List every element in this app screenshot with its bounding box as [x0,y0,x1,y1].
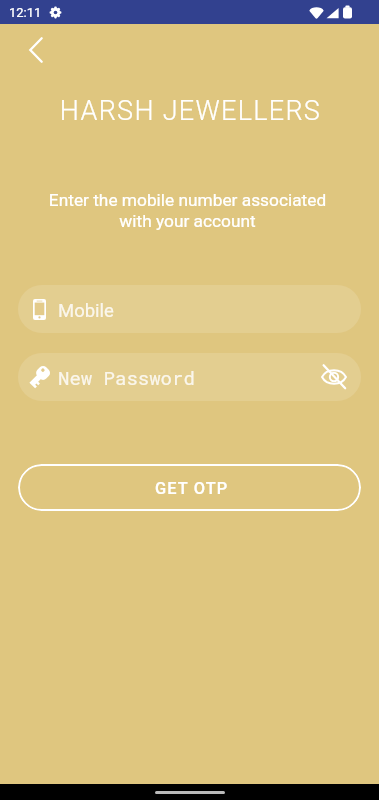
staticText: Enter the mobile number associated with … [40,190,335,231]
staticText: GET OTP [155,479,229,498]
button[interactable]: GET OTP [18,464,361,511]
button[interactable]: Mobile [18,285,361,333]
staticText: 12:11 [9,5,42,20]
button[interactable]: Back [14,28,58,72]
button[interactable]: Show password [319,361,349,391]
staticText: HARSH JEWELLERS [1,95,379,127]
button[interactable]: New Password [18,353,361,401]
staticText: New Password [58,365,321,390]
staticText: Mobile [58,300,114,322]
